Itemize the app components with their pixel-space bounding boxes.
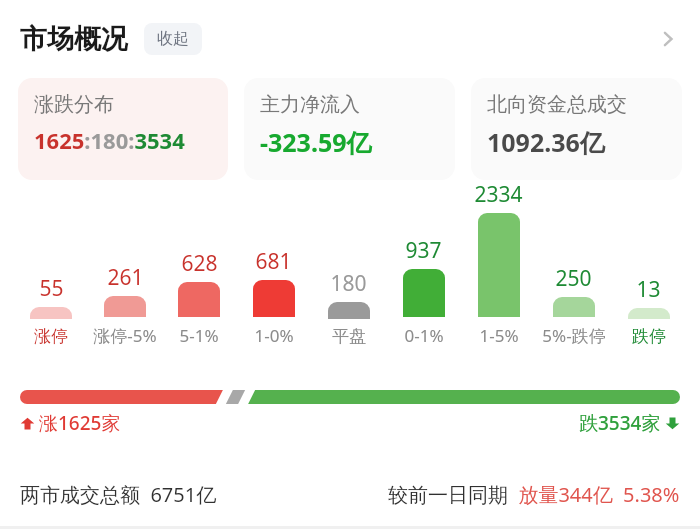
staticText: 937 (405, 236, 442, 265)
button[interactable]: 涨跌分布 (18, 78, 228, 180)
button[interactable]: 180 (311, 269, 386, 347)
staticText: 1-5% (479, 324, 519, 347)
staticText: 250 (555, 264, 592, 293)
staticText: 两市成交总额 6751亿 (20, 481, 217, 508)
staticText: 北向资金总成交 (487, 92, 627, 117)
staticText: 2334 (474, 180, 523, 209)
staticText: -323.59亿 (260, 125, 372, 159)
staticText: 跌3534家 (579, 410, 661, 436)
staticText: 涨跌分布 (34, 92, 114, 117)
button[interactable]: 681 (236, 247, 311, 347)
staticText: 1-0% (254, 324, 294, 347)
staticText: 收起 (157, 29, 189, 49)
staticText: 涨停-5% (93, 324, 157, 347)
staticText: 主力净流入 (260, 92, 360, 117)
staticText: 跌停 (632, 326, 666, 347)
button[interactable]: 628 (162, 249, 236, 347)
button[interactable]: 收起 (144, 23, 202, 55)
button[interactable]: 2334 (461, 180, 536, 347)
button[interactable]: 55 (14, 274, 88, 347)
staticText: 市场概况 (20, 22, 128, 56)
staticText: 55 (39, 274, 64, 303)
button[interactable]: 250 (536, 264, 611, 347)
button[interactable]: 937 (386, 236, 461, 347)
staticText: 628 (181, 249, 218, 278)
staticText: 0-1% (404, 324, 444, 347)
button[interactable]: 261 (88, 263, 162, 347)
staticText: 681 (255, 247, 292, 276)
staticText: 13 (636, 275, 661, 304)
button[interactable]: 北向资金总成交 (471, 78, 682, 180)
staticText: 平盘 (332, 326, 366, 347)
button[interactable]: 主力净流入 (244, 78, 455, 180)
staticText: 261 (107, 263, 144, 292)
button[interactable]: More (644, 15, 692, 63)
staticText: 180 (330, 269, 367, 298)
staticText: 1625:180:3534 (34, 125, 185, 155)
staticText: 较前一日同期 放量344亿 5.38% (388, 481, 680, 508)
staticText: 涨1625家 (39, 410, 121, 436)
staticText: 1092.36亿 (487, 125, 605, 159)
staticText: 5-1% (179, 324, 219, 347)
staticText: 涨停 (34, 326, 68, 347)
staticText: 5%-跌停 (542, 324, 606, 347)
button[interactable]: 13 (611, 275, 686, 347)
